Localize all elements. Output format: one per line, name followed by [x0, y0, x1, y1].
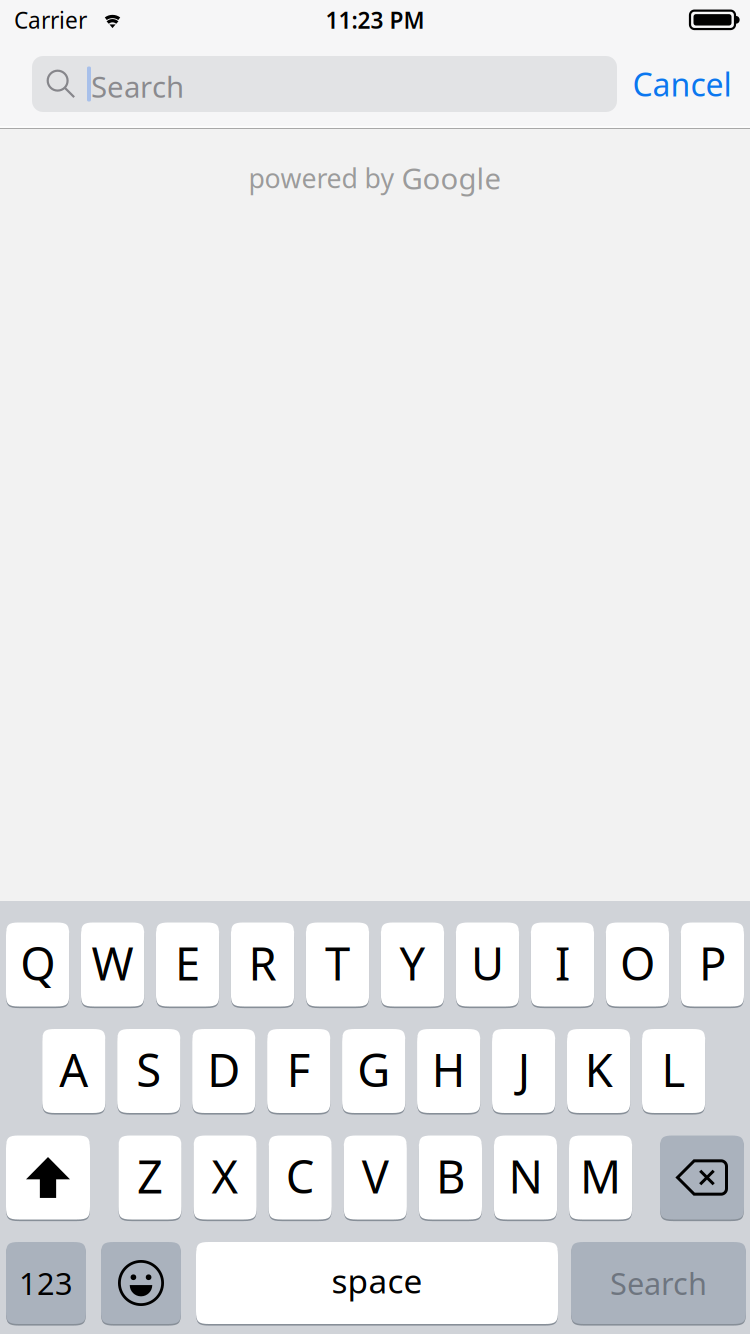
- button[interactable]: Emoji: [101, 1242, 181, 1324]
- button[interactable]: E: [156, 922, 219, 1006]
- button[interactable]: V: [344, 1135, 407, 1219]
- button[interactable]: M: [569, 1135, 632, 1219]
- staticText: Y: [399, 933, 425, 993]
- button[interactable]: C: [269, 1135, 332, 1219]
- staticText: N: [508, 1146, 542, 1206]
- staticText: B: [436, 1146, 465, 1206]
- staticText: Search: [610, 1263, 707, 1303]
- button[interactable]: space: [196, 1242, 558, 1324]
- staticText: G: [357, 1039, 390, 1100]
- staticText: R: [249, 933, 277, 993]
- button[interactable]: O: [606, 922, 669, 1006]
- button[interactable]: T: [306, 922, 369, 1006]
- staticText: S: [136, 1039, 161, 1100]
- staticText: X: [212, 1146, 239, 1206]
- button[interactable]: R: [231, 922, 294, 1006]
- button[interactable]: Delete: [660, 1135, 744, 1219]
- staticText: P: [699, 933, 726, 993]
- staticText: space: [331, 1258, 422, 1303]
- staticText: Google: [401, 158, 501, 197]
- button[interactable]: X: [193, 1135, 257, 1219]
- staticText: Search: [91, 67, 184, 106]
- button[interactable]: Y: [381, 922, 444, 1006]
- staticText: Q: [20, 933, 55, 993]
- button[interactable]: I: [531, 922, 594, 1006]
- staticText: H: [432, 1039, 466, 1100]
- staticText: 123: [19, 1263, 73, 1303]
- button[interactable]: B: [419, 1135, 482, 1219]
- button[interactable]: Search: [32, 56, 617, 112]
- button[interactable]: W: [81, 922, 144, 1006]
- button[interactable]: L: [642, 1029, 705, 1113]
- staticText: I: [555, 933, 570, 993]
- staticText: Carrier: [14, 5, 87, 35]
- staticText: A: [59, 1039, 88, 1100]
- button[interactable]: A: [42, 1029, 105, 1113]
- staticText: Cancel: [632, 63, 731, 105]
- staticText: Z: [137, 1146, 163, 1206]
- button[interactable]: 123: [6, 1242, 86, 1324]
- staticText: F: [287, 1039, 311, 1100]
- staticText: O: [620, 933, 655, 993]
- staticText: L: [662, 1039, 686, 1100]
- staticText: V: [362, 1146, 389, 1206]
- staticText: D: [207, 1039, 240, 1100]
- button[interactable]: H: [417, 1029, 480, 1113]
- button[interactable]: Cancel: [614, 56, 750, 112]
- staticText: 11:23 PM: [325, 5, 424, 35]
- button[interactable]: Shift: [6, 1135, 90, 1219]
- button[interactable]: N: [494, 1135, 557, 1219]
- staticText: T: [325, 933, 350, 993]
- staticText: E: [175, 933, 200, 993]
- button[interactable]: D: [192, 1029, 255, 1113]
- staticText: J: [518, 1039, 530, 1100]
- button[interactable]: J: [492, 1029, 555, 1113]
- button[interactable]: S: [117, 1029, 180, 1113]
- button[interactable]: Q: [6, 922, 69, 1006]
- button[interactable]: G: [342, 1029, 405, 1113]
- button[interactable]: U: [456, 922, 519, 1006]
- button[interactable]: F: [267, 1029, 330, 1113]
- staticText: W: [92, 933, 134, 993]
- staticText: C: [286, 1146, 315, 1206]
- button[interactable]: Z: [118, 1135, 182, 1219]
- staticText: U: [471, 933, 504, 993]
- staticText: K: [585, 1039, 613, 1100]
- staticText: M: [580, 1146, 621, 1206]
- button[interactable]: Search: [571, 1242, 746, 1324]
- button[interactable]: P: [681, 922, 744, 1006]
- staticText: powered by: [248, 160, 401, 196]
- button[interactable]: K: [567, 1029, 630, 1113]
